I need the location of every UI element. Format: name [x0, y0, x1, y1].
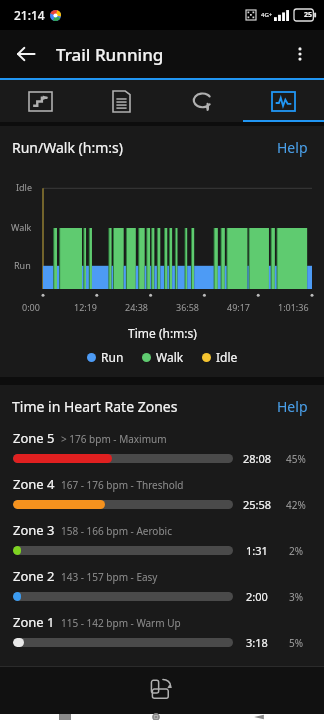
button[interactable]: Recent apps — [46, 714, 84, 720]
staticText: 158 - 166 bpm - Aerobic — [61, 524, 172, 538]
button[interactable]: Charts tab — [243, 80, 324, 122]
staticText: Run — [101, 349, 124, 365]
button[interactable]: Zone 1 — [0, 610, 324, 656]
staticText: Zone 2 — [13, 567, 55, 585]
staticText: Walk — [156, 349, 184, 365]
staticText: Zone 3 — [13, 521, 55, 539]
staticText: 45% — [286, 452, 306, 466]
staticText: Run/Walk (h:m:s) — [12, 138, 123, 157]
staticText: 1:31 — [246, 543, 268, 558]
staticText: 115 - 142 bpm - Warm Up — [61, 616, 181, 630]
staticText: 24:38 — [125, 301, 149, 313]
staticText: Time (h:m:s) — [128, 325, 197, 341]
button[interactable]: Back — [6, 34, 46, 74]
staticText: 143 - 157 bpm - Easy — [61, 570, 158, 584]
staticText: Idle — [16, 181, 32, 193]
button[interactable]: Zone 5 — [0, 426, 324, 472]
button[interactable]: Help — [273, 395, 312, 418]
button[interactable]: Zone 4 — [0, 472, 324, 518]
staticText: Run — [14, 259, 31, 271]
staticText: 25:58 — [243, 497, 272, 512]
button[interactable]: Back — [240, 714, 278, 720]
button[interactable]: Help — [273, 136, 312, 159]
staticText: 36:58 — [176, 301, 200, 313]
staticText: Zone 4 — [13, 475, 55, 493]
staticText: Time in Heart Rate Zones — [12, 397, 178, 416]
staticText: Idle — [216, 349, 238, 365]
button[interactable]: Zone 2 — [0, 564, 324, 610]
staticText: 49:17 — [227, 301, 251, 313]
button[interactable]: Details tab — [81, 80, 162, 122]
staticText: 4G+ — [261, 11, 273, 19]
staticText: 0:00 — [22, 301, 40, 313]
staticText: > 176 bpm - Maximum — [61, 432, 167, 446]
button[interactable]: Map tab — [0, 80, 81, 122]
staticText: 3:18 — [246, 635, 268, 650]
staticText: 5% — [289, 636, 304, 650]
button[interactable]: Laps tab — [162, 80, 243, 122]
staticText: 3% — [289, 590, 304, 604]
staticText: Zone 1 — [13, 613, 55, 631]
staticText: Walk — [11, 221, 32, 233]
staticText: 2:00 — [246, 589, 268, 604]
button[interactable]: Zone 3 — [0, 518, 324, 564]
staticText: 1:01:36 — [278, 301, 309, 313]
staticText: 21:14 — [14, 7, 45, 23]
staticText: Help — [277, 138, 308, 157]
button[interactable]: More options — [280, 34, 320, 74]
staticText: 12:19 — [74, 301, 98, 313]
staticText: Help — [277, 397, 308, 416]
button[interactable]: Rotate screen — [140, 668, 184, 712]
staticText: 42% — [286, 498, 306, 512]
staticText: Zone 5 — [13, 429, 55, 447]
staticText: 25 — [304, 10, 313, 20]
staticText: 167 - 176 bpm - Threshold — [61, 478, 184, 492]
staticText: 2% — [289, 544, 304, 558]
staticText: Trail Running — [56, 43, 164, 66]
staticText: 28:08 — [243, 451, 272, 466]
button[interactable]: Home — [143, 714, 181, 720]
